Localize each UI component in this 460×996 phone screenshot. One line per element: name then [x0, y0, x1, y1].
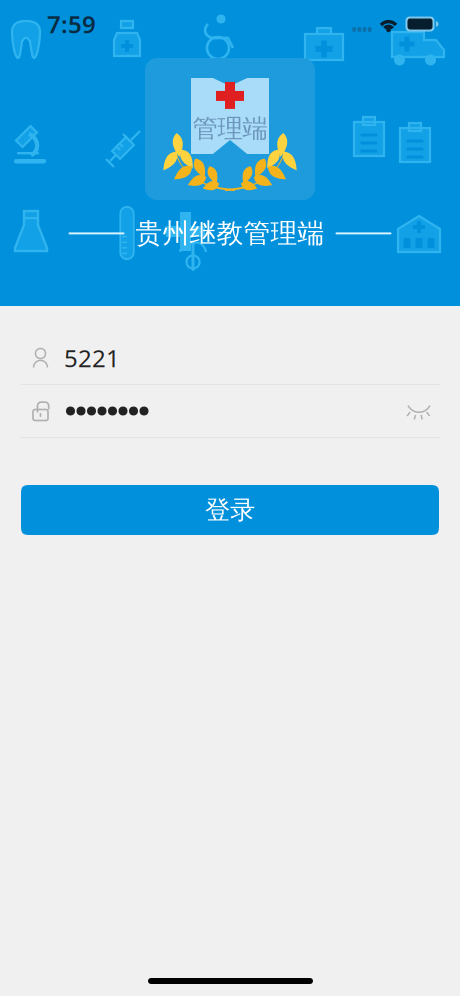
staticText: 贵州继教管理端 — [135, 217, 324, 250]
staticText: 登录 — [205, 494, 255, 525]
button[interactable]: Show password — [397, 389, 441, 433]
staticText: 5221 — [64, 342, 120, 374]
button[interactable]: 登录 — [21, 485, 439, 535]
staticText: 管理端 — [192, 113, 267, 144]
staticText: 7:59 — [47, 8, 96, 40]
